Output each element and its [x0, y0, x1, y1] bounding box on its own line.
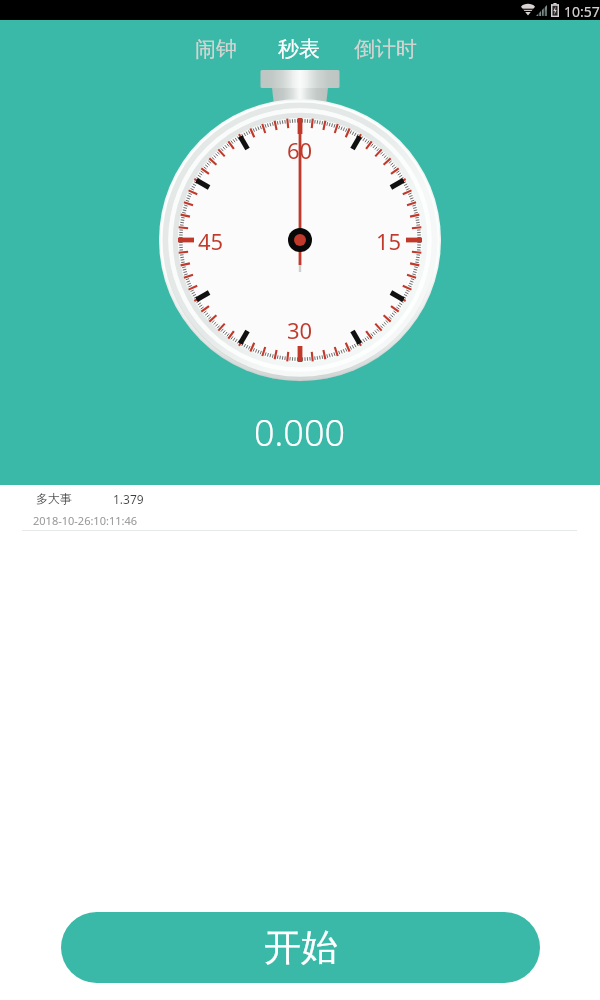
button[interactable]: 倒计时	[347, 31, 423, 67]
button[interactable]: 闹钟	[190, 31, 242, 67]
staticText: 秒表	[278, 36, 320, 62]
staticText: 多大事	[36, 491, 72, 506]
other: Wi-Fi signal	[521, 4, 535, 16]
other: Battery	[551, 3, 559, 17]
button[interactable]: 秒表	[273, 31, 325, 67]
staticText: 倒计时	[354, 36, 417, 62]
staticText: 闹钟	[195, 36, 237, 62]
other: Cellular signal	[536, 5, 547, 16]
staticText: 开始	[264, 924, 338, 971]
staticText: 10:57	[564, 2, 600, 21]
staticText: 1.379	[113, 491, 144, 507]
staticText: 0.000	[254, 408, 346, 457]
staticText: 2018-10-26:10:11:46	[33, 513, 138, 527]
button[interactable]: 多大事	[0, 485, 600, 531]
button[interactable]: 开始	[61, 912, 540, 983]
